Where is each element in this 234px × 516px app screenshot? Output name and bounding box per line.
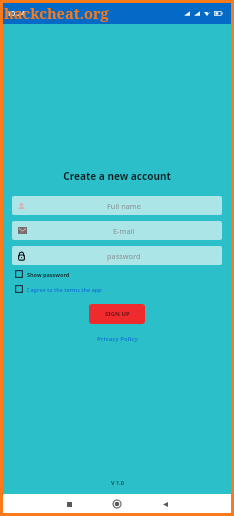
staticText: Full name	[107, 201, 141, 211]
button[interactable]: Full name	[12, 196, 222, 215]
button[interactable]: Back	[156, 495, 174, 513]
button[interactable]: Home	[108, 495, 126, 513]
staticText: E-mail	[113, 226, 135, 236]
staticText: 10:24	[7, 9, 25, 19]
staticText: V 1.0	[111, 479, 124, 486]
button[interactable]: E-mail	[12, 221, 222, 240]
button[interactable]: Recents	[60, 495, 78, 513]
button[interactable]: Show password	[15, 270, 70, 278]
staticText: SIGN UP	[105, 310, 130, 318]
button[interactable]: Privacy Policy	[97, 335, 138, 343]
staticText: Create a new account	[3, 169, 231, 183]
staticText: password	[107, 251, 141, 261]
staticText: I agree to the terms the app	[27, 286, 102, 293]
staticText: Show password	[27, 271, 70, 278]
staticText: hackcheat.org	[4, 3, 109, 23]
button[interactable]: I agree to the terms the app	[15, 285, 102, 293]
button[interactable]: SIGN UP	[89, 304, 145, 324]
button[interactable]: password	[12, 246, 222, 265]
